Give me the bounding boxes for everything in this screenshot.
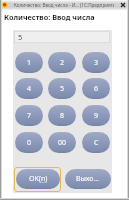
staticText: 0	[27, 138, 32, 148]
staticText: 7	[27, 111, 32, 121]
button[interactable]: 8	[48, 105, 76, 126]
button[interactable]: 7	[15, 105, 43, 126]
button[interactable]: 00	[48, 132, 76, 153]
staticText: 1	[27, 58, 32, 68]
staticText: 9	[94, 111, 99, 121]
button[interactable]: 5	[48, 78, 76, 99]
button[interactable]: 0	[15, 132, 43, 153]
button[interactable]: 5	[14, 31, 110, 43]
staticText: Количество: Ввод числа - И... (1С:Предпр…	[14, 2, 114, 8]
staticText: C	[94, 138, 99, 148]
button[interactable]: Close	[118, 1, 127, 9]
button[interactable]: 2	[48, 52, 76, 73]
button[interactable]: 4	[15, 78, 43, 99]
staticText: Количество: Ввод числа	[4, 12, 95, 22]
staticText: 00	[58, 138, 67, 148]
button[interactable]: 6	[82, 78, 110, 99]
staticText: 2	[60, 58, 65, 68]
staticText: 6	[94, 84, 99, 94]
staticText: OK(n)	[29, 174, 48, 184]
button[interactable]: Выхо...	[65, 169, 111, 189]
staticText: 8	[60, 111, 65, 121]
staticText: Выхо...	[76, 174, 100, 184]
staticText: 5	[60, 84, 65, 94]
staticText: 3	[94, 58, 99, 68]
button[interactable]: 3	[82, 52, 110, 73]
button[interactable]: 9	[82, 105, 110, 126]
staticText: 5	[18, 32, 23, 42]
button[interactable]: 1	[15, 52, 43, 73]
button[interactable]: OK(n)	[16, 169, 60, 189]
button[interactable]: C	[82, 132, 110, 153]
staticText: 4	[27, 84, 32, 94]
